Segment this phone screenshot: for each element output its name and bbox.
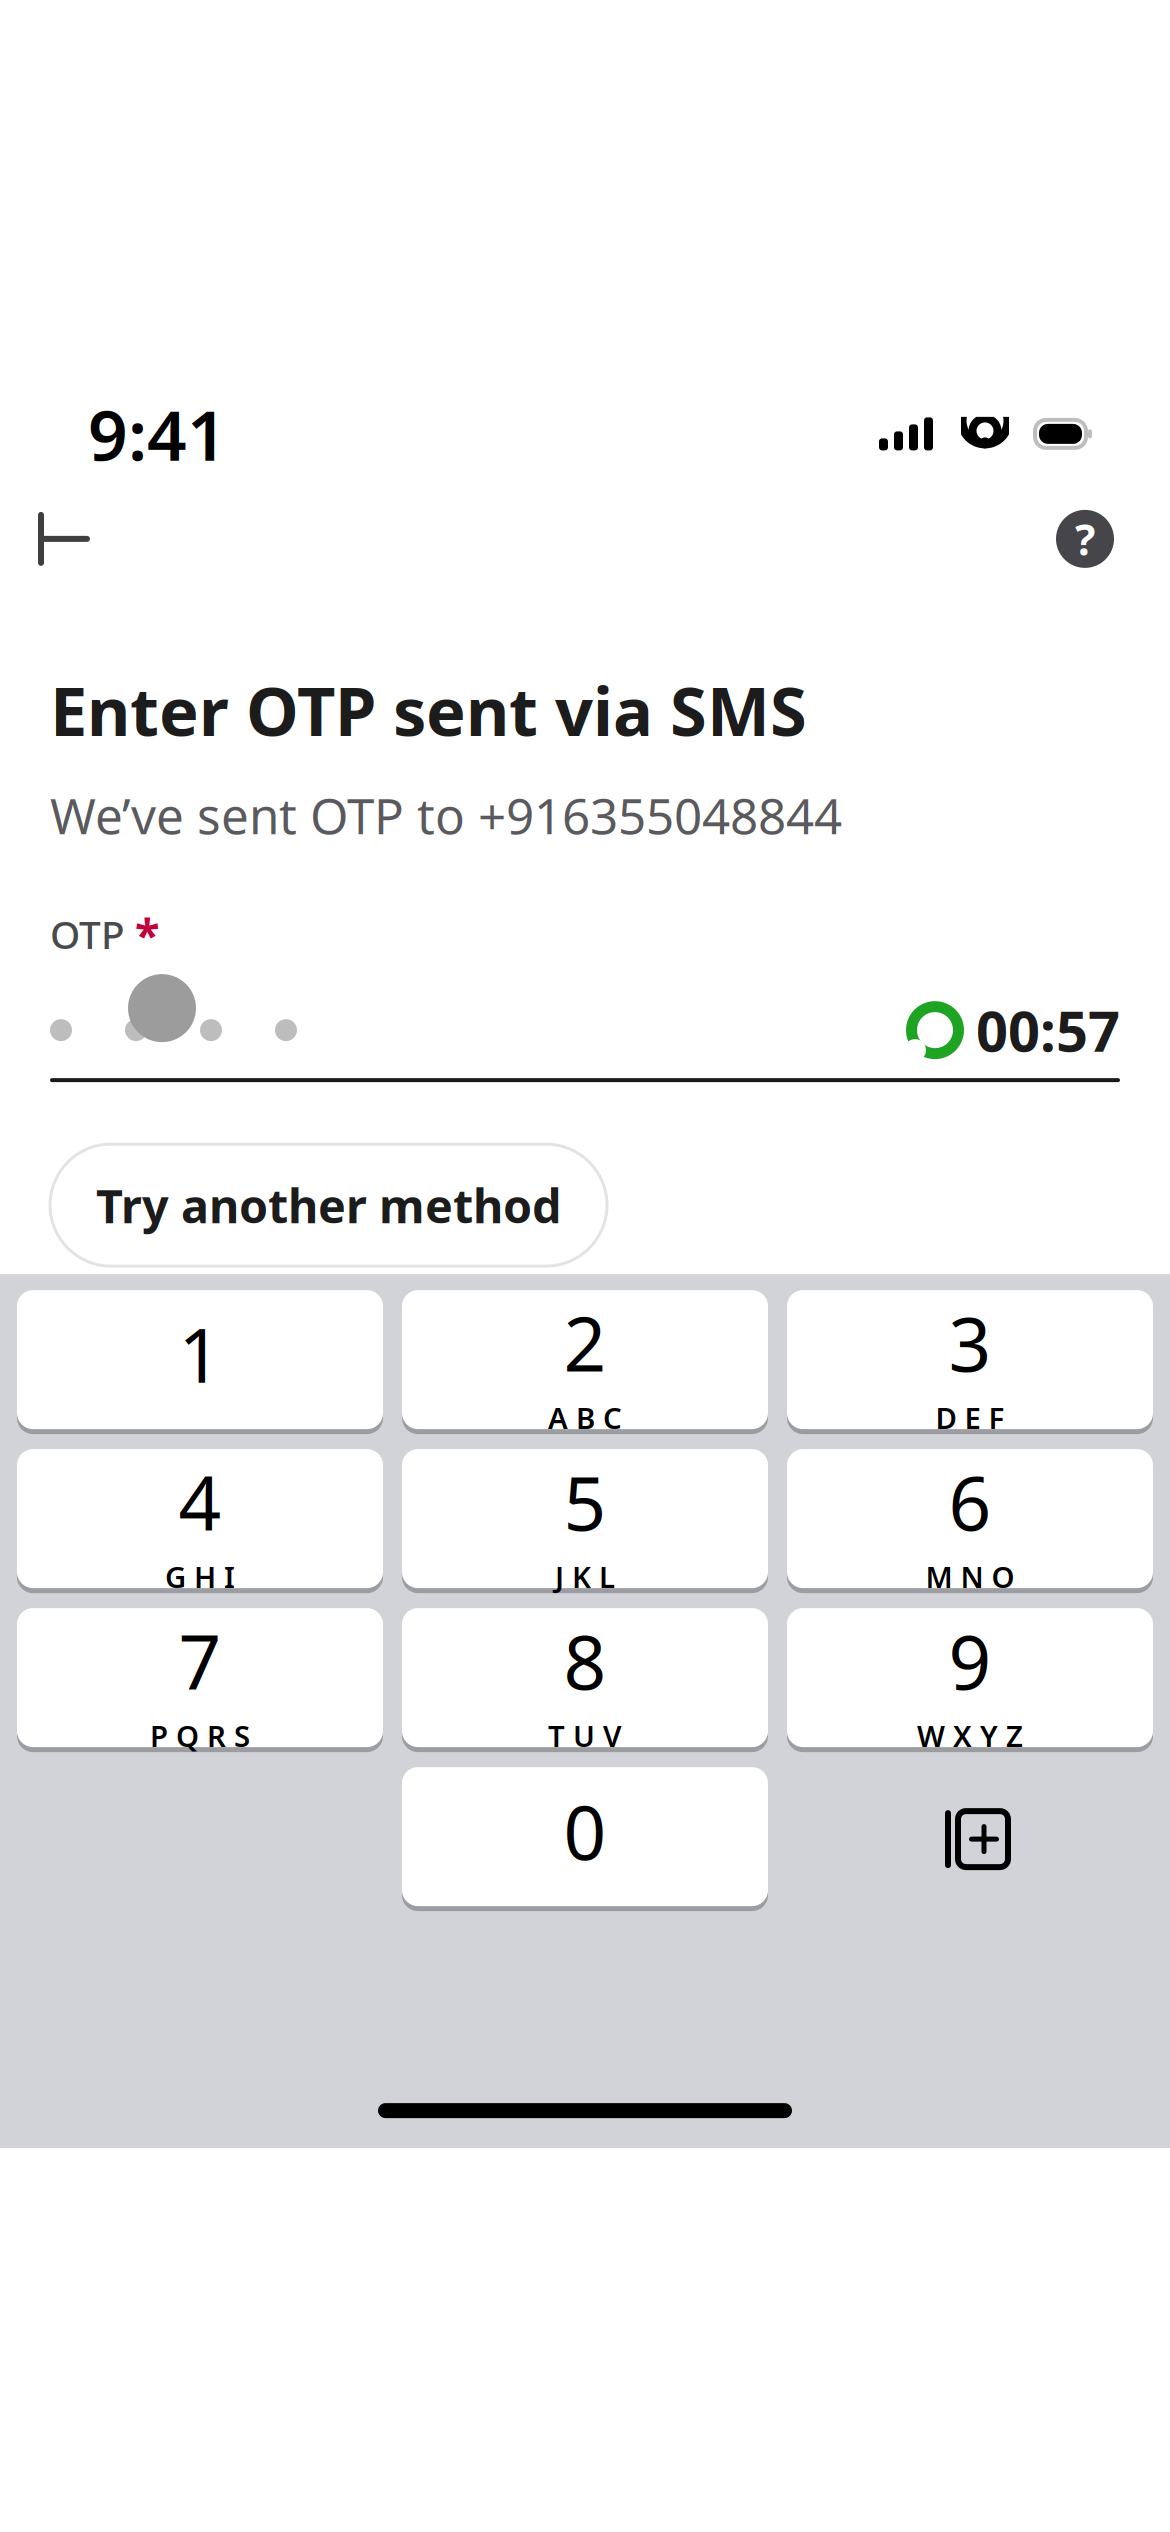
staticText: 8 (563, 1611, 606, 1710)
staticText: J K L (555, 1557, 615, 1596)
button[interactable]: 2 (402, 1290, 768, 1434)
staticText: 6 (948, 1452, 991, 1551)
staticText: Try another method (96, 1174, 561, 1236)
staticText: P Q R S (150, 1716, 250, 1755)
button[interactable]: 4 (17, 1449, 383, 1593)
staticText: We’ve sent OTP to +916355048844 (50, 782, 842, 848)
staticText: Enter OTP sent via SMS (50, 666, 807, 754)
button[interactable]: 5 (402, 1449, 768, 1593)
staticText: A B C (548, 1398, 622, 1437)
button[interactable]: Delete (787, 1767, 1153, 1911)
button[interactable]: 7 (17, 1608, 383, 1752)
staticText: ? (1075, 511, 1095, 567)
staticText: D E F (935, 1398, 1004, 1437)
staticText: 9:41 (88, 388, 227, 480)
staticText: T U V (548, 1716, 622, 1755)
staticText: 3 (948, 1293, 991, 1392)
button[interactable]: Back (10, 491, 106, 587)
button[interactable]: 0 (402, 1767, 768, 1911)
staticText: 1 (178, 1304, 221, 1403)
staticText: 4 (178, 1452, 221, 1551)
staticText: 5 (563, 1452, 606, 1551)
button[interactable]: 3 (787, 1290, 1153, 1434)
button[interactable]: 6 (787, 1449, 1153, 1593)
staticText: W X Y Z (917, 1716, 1023, 1755)
button[interactable]: 8 (402, 1608, 768, 1752)
button[interactable]: Try another method (50, 1144, 607, 1266)
staticText: * (135, 904, 160, 964)
staticText: 7 (178, 1611, 221, 1710)
staticText: 00:57 (976, 993, 1120, 1067)
staticText: G H I (165, 1557, 235, 1596)
button[interactable]: 1 (17, 1290, 383, 1434)
staticText: OTP (50, 908, 125, 960)
staticText: M N O (925, 1557, 1014, 1596)
staticText: 2 (563, 1293, 606, 1392)
staticText: 0 (563, 1781, 606, 1880)
button[interactable]: 9 (787, 1608, 1153, 1752)
button[interactable]: Help (1056, 510, 1114, 568)
staticText: 9 (948, 1611, 991, 1710)
